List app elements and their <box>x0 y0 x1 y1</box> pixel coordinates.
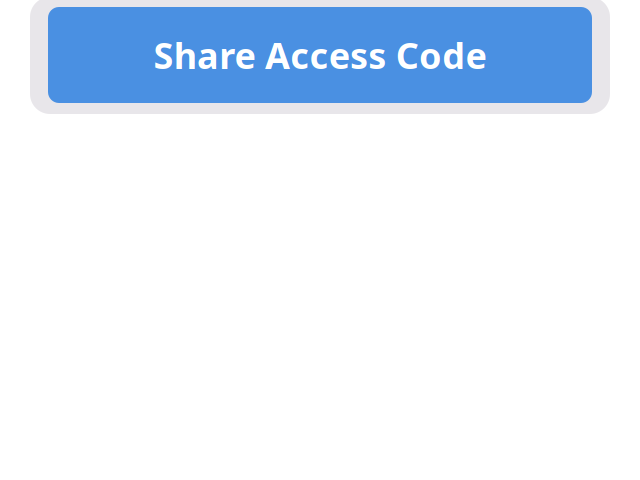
staticText: Share Access Code <box>153 31 486 79</box>
button[interactable]: Share Access Code <box>48 7 592 103</box>
